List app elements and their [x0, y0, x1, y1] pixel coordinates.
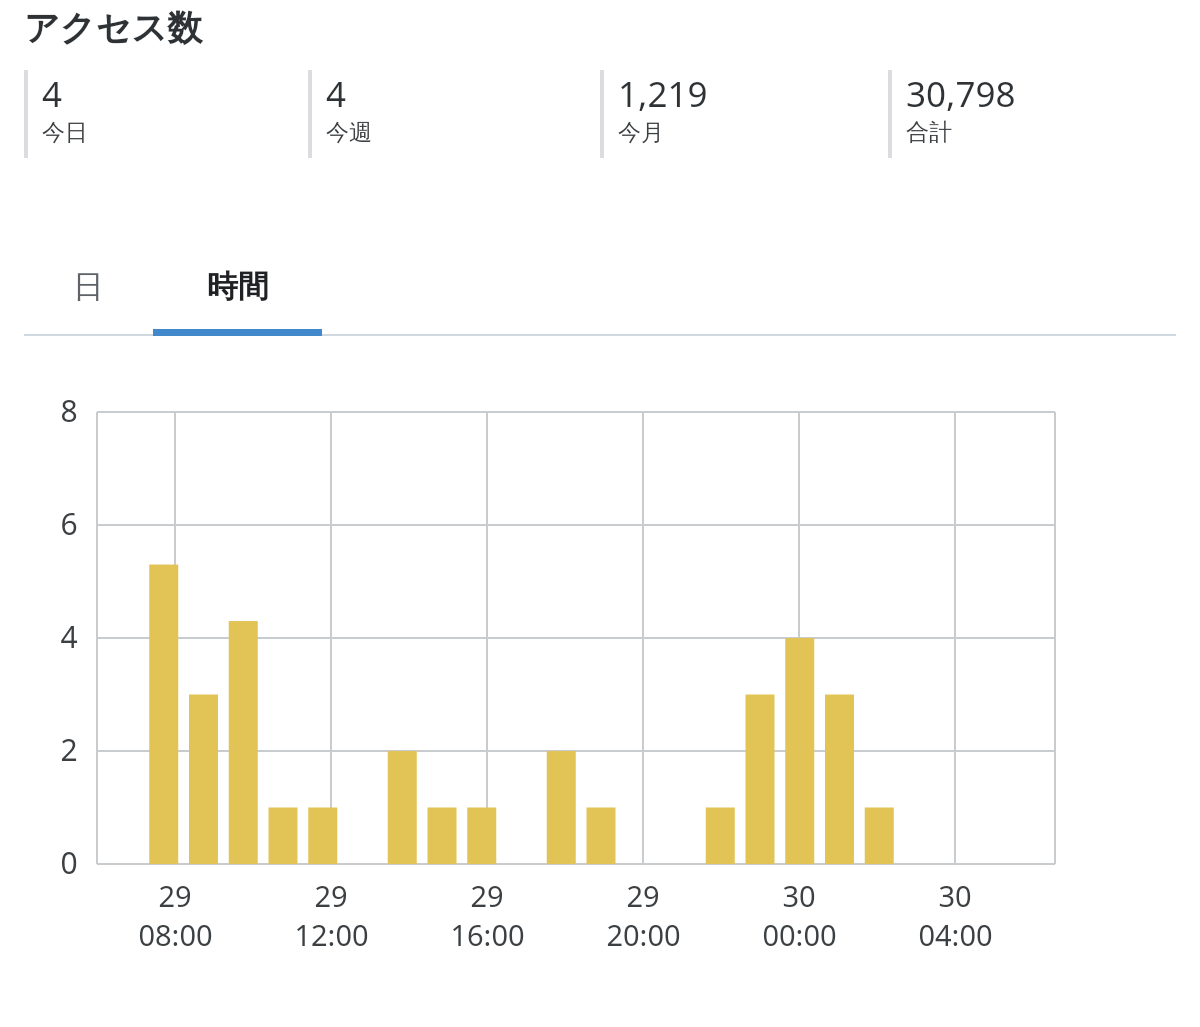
staticText: アクセス数: [24, 6, 203, 50]
staticText: 4: [326, 70, 347, 118]
staticText: 日: [73, 267, 104, 306]
staticText: 30: [782, 876, 816, 915]
button[interactable]: 1,219: [600, 70, 888, 158]
staticText: 4: [42, 70, 63, 118]
staticText: 合計: [906, 118, 952, 147]
staticText: 今日: [42, 118, 88, 147]
staticText: 20:00: [606, 915, 681, 954]
staticText: 6: [60, 503, 78, 544]
staticText: 29: [626, 876, 660, 915]
staticText: 12:00: [294, 915, 369, 954]
button[interactable]: 時間: [153, 238, 322, 334]
staticText: 30: [938, 876, 972, 915]
staticText: 1,219: [618, 70, 708, 118]
button[interactable]: 4: [308, 70, 600, 158]
staticText: 29: [470, 876, 504, 915]
button[interactable]: 4: [24, 70, 308, 158]
staticText: 4: [60, 616, 78, 657]
staticText: 8: [60, 390, 78, 431]
staticText: 00:00: [762, 915, 837, 954]
staticText: 29: [314, 876, 348, 915]
staticText: 04:00: [918, 915, 993, 954]
staticText: 今月: [618, 118, 664, 147]
staticText: 0: [60, 842, 78, 883]
button[interactable]: 30,798: [888, 70, 1180, 158]
staticText: 16:00: [450, 915, 525, 954]
staticText: 今週: [326, 118, 372, 147]
staticText: 時間: [207, 267, 269, 306]
staticText: 2: [60, 729, 78, 770]
staticText: 29: [158, 876, 192, 915]
staticText: 08:00: [138, 915, 213, 954]
button[interactable]: 日: [24, 238, 153, 334]
staticText: 30,798: [906, 70, 1016, 118]
